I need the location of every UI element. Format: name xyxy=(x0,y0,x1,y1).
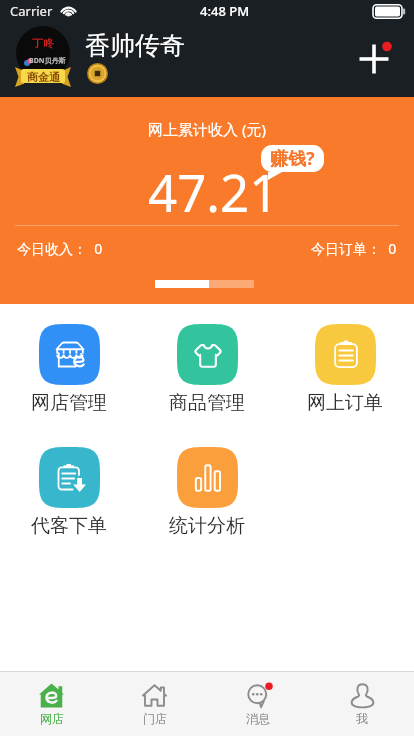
staticText: 网店管理 xyxy=(31,391,107,415)
staticText: 4:48 PM xyxy=(200,2,250,20)
button[interactable]: Add xyxy=(352,37,396,81)
button[interactable]: 赚钱? xyxy=(261,145,324,172)
staticText: 商品管理 xyxy=(169,391,245,415)
staticText: 网上订单 xyxy=(307,391,383,415)
staticText: Carrier xyxy=(10,2,53,20)
staticText: BDN贝丹斯 xyxy=(29,56,66,66)
staticText: 商金通 xyxy=(27,70,60,84)
staticText: 今日收入： 0 xyxy=(17,239,103,258)
staticText: 统计分析 xyxy=(169,514,245,538)
staticText: 我 xyxy=(356,711,368,726)
button[interactable]: 门店 xyxy=(103,672,206,736)
staticText: 赚钱? xyxy=(270,146,315,171)
button[interactable]: 商品管理 xyxy=(138,324,276,415)
staticText: 门店 xyxy=(143,711,167,726)
staticText: 47.21 xyxy=(148,157,279,226)
staticText: 消息 xyxy=(246,711,270,726)
button[interactable]: 代客下单 xyxy=(0,447,138,538)
staticText: 网上累计收入 (元) xyxy=(148,119,266,139)
staticText: 网店 xyxy=(40,711,64,726)
staticText: 今日订单： 0 xyxy=(311,239,397,258)
button[interactable]: 网店管理 xyxy=(0,324,138,415)
button[interactable]: 网上订单 xyxy=(276,324,414,415)
staticText: 香帅传奇 xyxy=(85,30,185,61)
button[interactable]: 我 xyxy=(310,672,414,736)
staticText: 丁咚 xyxy=(32,36,54,50)
button[interactable]: 统计分析 xyxy=(138,447,276,538)
button[interactable]: 消息 xyxy=(206,672,310,736)
button[interactable]: 网店 xyxy=(0,672,103,736)
staticText: 代客下单 xyxy=(31,514,107,538)
